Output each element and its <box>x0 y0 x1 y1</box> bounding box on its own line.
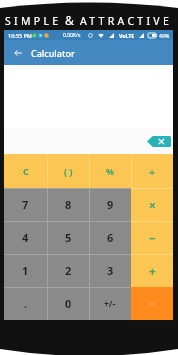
staticText: ATTRACTIVE <box>80 14 173 28</box>
button[interactable]: 1 <box>4 254 47 287</box>
button[interactable]: % <box>89 154 131 188</box>
button[interactable] <box>131 287 173 320</box>
button[interactable]: 5 <box>47 221 89 254</box>
staticText: − <box>149 230 156 246</box>
button[interactable]: ( ) <box>47 154 89 188</box>
staticText: 4 <box>22 230 29 245</box>
button[interactable]: 9 <box>89 188 131 221</box>
staticText: 7 <box>22 197 29 212</box>
staticText: 8 <box>65 197 72 212</box>
staticText: 10:55 PM <box>8 32 32 39</box>
staticText: Calculator <box>31 47 75 59</box>
button[interactable]: ÷ <box>131 154 173 188</box>
staticText: 9 <box>107 197 114 212</box>
button[interactable]: 6 <box>89 221 131 254</box>
button[interactable]: + <box>131 254 173 287</box>
staticText: % <box>106 165 115 177</box>
staticText: 0.00K/s <box>63 32 81 39</box>
button[interactable]: 3 <box>89 254 131 287</box>
staticText: × <box>149 197 156 213</box>
button[interactable]: 2 <box>47 254 89 287</box>
staticText: 49% <box>159 32 170 39</box>
button[interactable]: Back <box>9 44 26 61</box>
staticText: 1 <box>22 263 29 278</box>
staticText: C <box>23 165 29 177</box>
button[interactable]: × <box>131 188 173 221</box>
staticText: SIMPLE <box>5 14 62 28</box>
button[interactable]: +/- <box>89 287 131 320</box>
staticText: VoLTE <box>119 32 135 39</box>
staticText: + <box>149 263 156 279</box>
staticText: 6 <box>107 230 114 245</box>
button[interactable]: Backspace <box>147 136 171 147</box>
staticText: ÷ <box>149 164 156 179</box>
staticText: ( ) <box>64 165 73 177</box>
button[interactable]: 4 <box>4 221 47 254</box>
button[interactable]: 7 <box>4 188 47 221</box>
staticText: 0 <box>65 296 72 311</box>
staticText: +/- <box>104 298 116 310</box>
button[interactable]: . <box>4 287 47 320</box>
button[interactable]: − <box>131 221 173 254</box>
staticText: . <box>24 296 28 311</box>
button[interactable]: 0 <box>47 287 89 320</box>
staticText: & <box>65 12 74 28</box>
staticText: 3 <box>107 263 114 278</box>
button[interactable]: C <box>4 154 47 188</box>
button[interactable]: 8 <box>47 188 89 221</box>
staticText: 2 <box>65 263 72 278</box>
staticText: 5 <box>65 230 72 245</box>
